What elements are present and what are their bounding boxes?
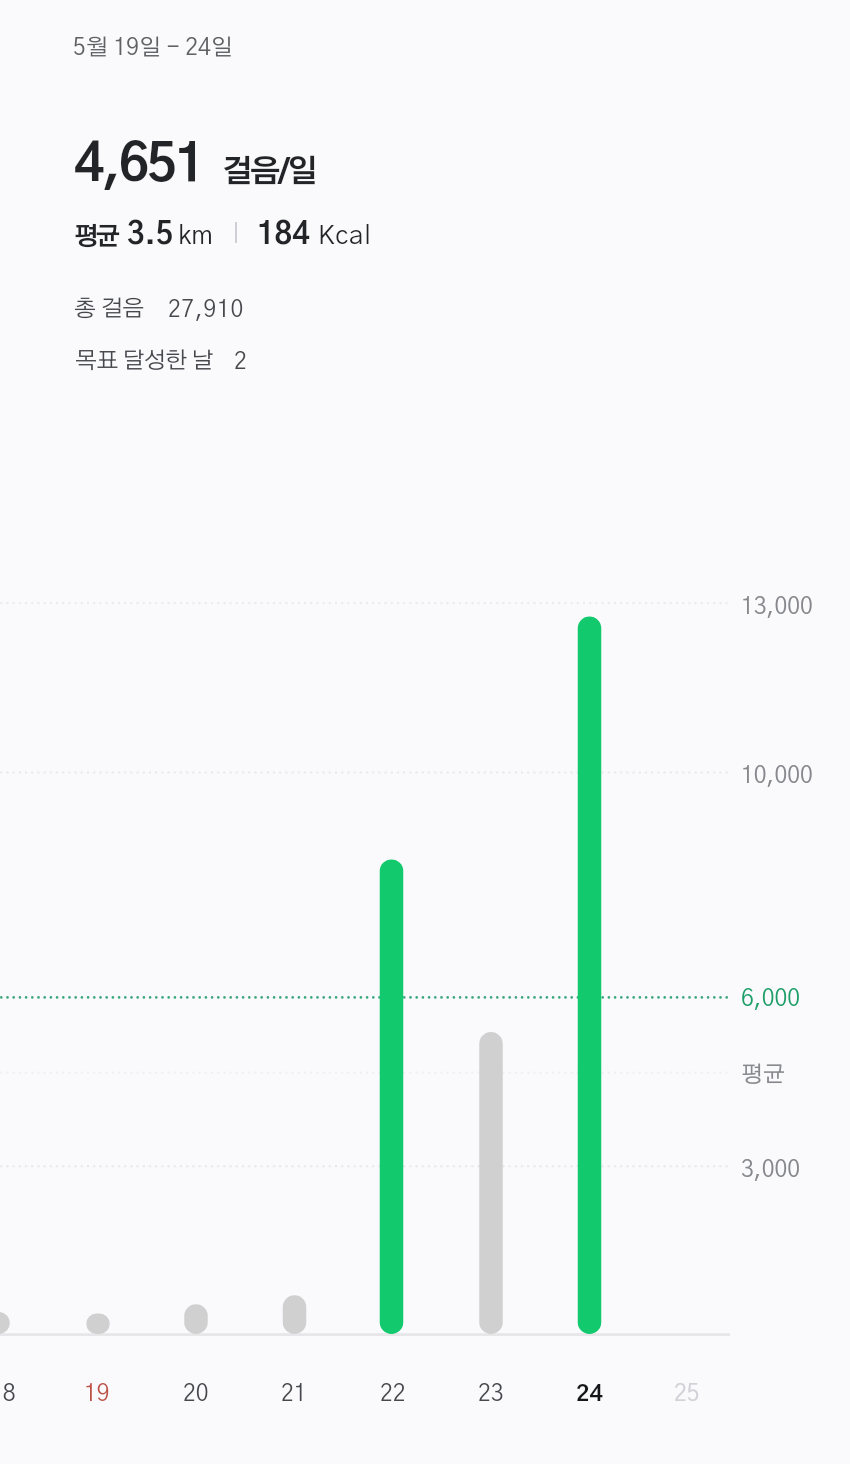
staticText: 평균 — [74, 225, 117, 250]
button[interactable]: 18 — [0, 1362, 37, 1420]
button[interactable]: 23 — [459, 1362, 525, 1420]
staticText: 27,910 — [168, 299, 245, 322]
staticText: 3.5 — [127, 220, 174, 250]
staticText: 2 — [234, 351, 247, 374]
staticText: 평균 — [741, 1064, 786, 1087]
button[interactable]: 20 — [164, 1362, 230, 1420]
staticText: 24 — [576, 1383, 603, 1406]
button[interactable]: 22 — [361, 1362, 427, 1420]
staticText: 3,000 — [741, 1159, 801, 1182]
button[interactable]: 24 — [557, 1362, 623, 1420]
staticText: 23 — [478, 1383, 504, 1406]
staticText: 걸음/일 — [222, 157, 315, 188]
staticText: 18 — [0, 1383, 16, 1406]
staticText: 22 — [380, 1383, 406, 1406]
staticText: 총 걸음 — [74, 298, 144, 321]
staticText: 4,651 — [74, 140, 203, 192]
staticText: 6,000 — [741, 988, 801, 1011]
staticText: 20 — [183, 1383, 209, 1406]
staticText: Kcal — [318, 223, 372, 249]
staticText: 184 — [257, 220, 310, 250]
staticText: 21 — [281, 1383, 307, 1406]
button[interactable]: 5월 19일 - 24일 — [64, 24, 244, 68]
staticText: 5월 19일 - 24일 — [73, 37, 233, 60]
staticText: 10,000 — [741, 765, 813, 788]
staticText: 19 — [84, 1383, 110, 1406]
staticText: km — [178, 223, 213, 249]
button[interactable]: 21 — [262, 1362, 328, 1420]
staticText: 25 — [674, 1383, 700, 1406]
button[interactable]: 19 — [65, 1362, 131, 1420]
button[interactable]: 25 — [655, 1362, 721, 1420]
staticText: 13,000 — [741, 596, 813, 619]
staticText: 목표 달성한 날 — [75, 350, 214, 373]
